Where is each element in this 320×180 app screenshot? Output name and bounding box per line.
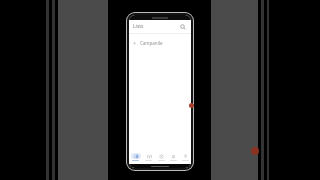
button[interactable]: Campanile [129,37,191,48]
button[interactable]: Lists [129,150,142,164]
button[interactable]: Alerts [167,150,179,164]
button[interactable]: Nearby [155,150,167,164]
button[interactable]: Search [178,22,187,31]
button[interactable]: Profile [179,150,191,164]
staticText: Campanile [140,40,163,46]
button[interactable]: Map [142,150,155,164]
staticText: Lists [133,23,144,30]
